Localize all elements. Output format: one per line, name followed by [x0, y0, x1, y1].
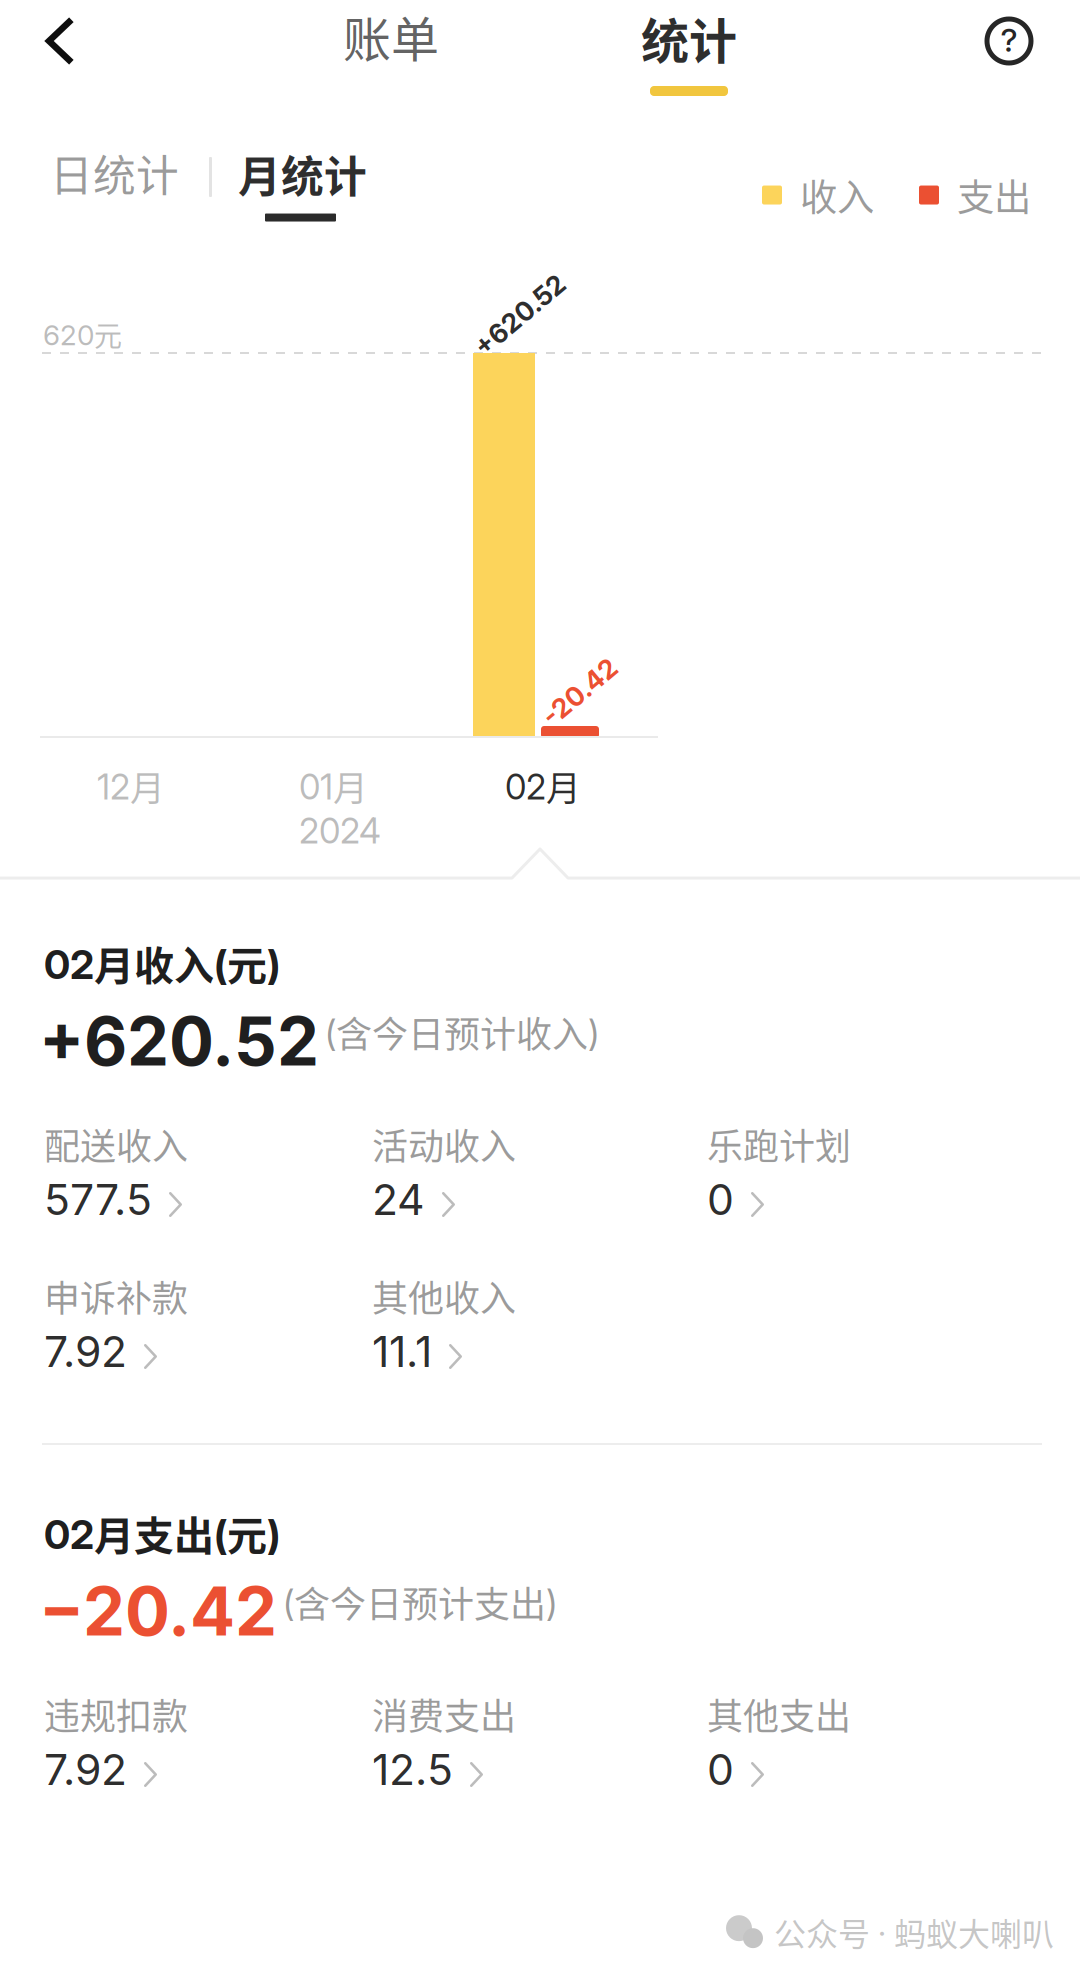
staticText: 收入 — [800, 168, 874, 222]
staticText: 7.92 — [44, 1326, 127, 1377]
staticText: 月统计 — [238, 143, 367, 205]
button[interactable]: 统计 — [589, 0, 789, 120]
staticText: 公众号 · 蚂蚁大喇叭 — [774, 1909, 1054, 1955]
staticText: 2024 — [299, 810, 381, 852]
button[interactable]: 账单 — [291, 0, 491, 72]
staticText: 12.5 — [372, 1744, 453, 1795]
staticText: 活动收入 — [372, 1118, 516, 1170]
staticText: -20.42 — [535, 676, 624, 708]
staticText: +620.52 — [39, 1001, 319, 1082]
staticText: 02月支出(元) — [44, 1504, 280, 1562]
button[interactable]: Back — [0, 0, 80, 82]
staticText: 01月 — [299, 761, 368, 811]
staticText: 乐跑计划 — [707, 1118, 851, 1170]
staticText: 支出 — [957, 168, 1031, 222]
staticText: (含今日预计收入) — [325, 1006, 599, 1058]
staticText: +620.52 — [465, 299, 575, 331]
button[interactable]: 其他收入 — [372, 1268, 672, 1368]
button[interactable]: 活动收入 — [372, 1116, 672, 1216]
staticText: 02月 — [505, 761, 581, 811]
staticText: 0 — [707, 1744, 734, 1795]
staticText: 统计 — [641, 3, 737, 72]
staticText: 违规扣款 — [44, 1688, 188, 1740]
button[interactable]: Help — [967, 0, 1051, 82]
staticText: 620元 — [43, 314, 122, 354]
staticText: 其他收入 — [372, 1270, 516, 1322]
staticText: 0 — [707, 1174, 734, 1225]
staticText: 日统计 — [50, 142, 179, 204]
staticText: 11.1 — [372, 1326, 432, 1377]
button[interactable]: 日统计 — [50, 130, 220, 216]
staticText: 配送收入 — [44, 1118, 188, 1170]
staticText: 其他支出 — [707, 1688, 851, 1740]
staticText: 消费支出 — [372, 1688, 516, 1740]
staticText: 7.92 — [44, 1744, 127, 1795]
button[interactable]: 申诉补款 — [44, 1268, 344, 1368]
button[interactable]: 其他支出 — [707, 1686, 1007, 1786]
button[interactable]: 乐跑计划 — [707, 1116, 1007, 1216]
button[interactable]: 违规扣款 — [44, 1686, 344, 1786]
staticText: 12月 — [97, 761, 165, 811]
staticText: 申诉补款 — [44, 1270, 188, 1322]
button[interactable]: 消费支出 — [372, 1686, 672, 1786]
button[interactable]: 配送收入 — [44, 1116, 344, 1216]
staticText: 02月收入(元) — [44, 934, 280, 992]
staticText: (含今日预计支出) — [283, 1576, 557, 1628]
staticText: 账单 — [343, 1, 439, 71]
button[interactable]: 月统计 — [238, 132, 408, 224]
staticText: 577.5 — [44, 1174, 152, 1225]
staticText: 24 — [372, 1174, 425, 1225]
staticText: ? — [1000, 21, 1017, 59]
staticText: −20.42 — [39, 1571, 277, 1652]
